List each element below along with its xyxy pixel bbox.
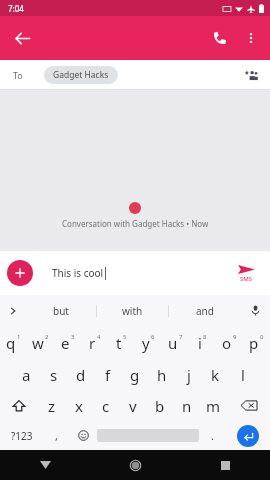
button[interactable]: Expand suggestions — [0, 295, 26, 326]
button[interactable]: Gadget Hacks — [44, 66, 118, 84]
staticText: Gadget Hacks — [53, 69, 109, 81]
button[interactable]: Back — [6, 22, 38, 54]
button[interactable]: e — [54, 326, 81, 359]
staticText: e — [61, 333, 70, 353]
staticText: This is cool — [52, 266, 104, 280]
staticText: ?123 — [11, 429, 33, 443]
button[interactable]: x — [65, 390, 92, 421]
staticText: p — [249, 333, 259, 353]
staticText: To — [13, 69, 23, 81]
staticText: 5 — [123, 333, 127, 341]
button[interactable]: z — [38, 390, 65, 421]
button[interactable]: t — [108, 326, 135, 359]
staticText: 6 — [151, 333, 155, 341]
staticText: with — [122, 304, 143, 318]
button[interactable]: More options — [236, 23, 266, 53]
staticText: n — [182, 396, 192, 416]
staticText: 7 — [179, 333, 183, 341]
staticText: t — [116, 333, 122, 353]
staticText: 2 — [45, 333, 49, 341]
staticText: h — [157, 365, 167, 385]
staticText: but — [53, 304, 69, 318]
staticText: q — [6, 333, 16, 353]
staticText: g — [130, 365, 140, 385]
button[interactable]: Voice input — [240, 295, 270, 326]
button[interactable]: . — [199, 421, 225, 450]
staticText: y — [142, 333, 150, 353]
button[interactable]: l — [229, 359, 256, 390]
staticText: s — [50, 365, 58, 385]
staticText: u — [168, 333, 178, 353]
staticText: v — [129, 396, 137, 416]
staticText: c — [102, 396, 110, 416]
staticText: 7:04 — [8, 3, 24, 14]
button[interactable]: c — [92, 390, 119, 421]
staticText: b — [155, 396, 165, 416]
button[interactable]: k — [202, 359, 229, 390]
staticText: 4 — [97, 333, 101, 341]
button[interactable]: s — [40, 359, 67, 390]
staticText: f — [105, 365, 111, 385]
button[interactable]: o — [216, 326, 243, 359]
button[interactable]: Send SMS — [229, 261, 263, 286]
button[interactable]: i — [189, 326, 216, 359]
staticText: j — [187, 365, 191, 385]
button[interactable]: Shift — [0, 390, 38, 421]
staticText: x — [75, 396, 83, 416]
staticText: i — [198, 333, 202, 353]
staticText: d — [76, 365, 86, 385]
button[interactable]: This is cool — [40, 258, 225, 288]
button[interactable]: b — [146, 390, 173, 421]
staticText: 3 — [71, 333, 75, 341]
staticText: 8 — [203, 333, 207, 341]
staticText: . — [211, 428, 214, 443]
button[interactable]: Back — [0, 450, 90, 480]
button[interactable]: u — [162, 326, 189, 359]
button[interactable]: d — [67, 359, 94, 390]
staticText: 1 — [17, 333, 21, 341]
staticText: m — [206, 396, 221, 416]
button[interactable]: y — [135, 326, 162, 359]
staticText: SMS — [240, 275, 253, 283]
button[interactable]: Call — [204, 22, 236, 54]
staticText: z — [48, 396, 56, 416]
staticText: Conversation with Gadget Hacks • Now — [62, 218, 209, 229]
button[interactable]: with — [97, 295, 168, 326]
button[interactable]: ?123 — [0, 421, 43, 450]
button[interactable]: p — [243, 326, 270, 359]
button[interactable]: m — [200, 390, 227, 421]
button[interactable]: Recent apps — [180, 450, 270, 480]
staticText: k — [211, 365, 220, 385]
staticText: a — [22, 365, 31, 385]
button[interactable]: q — [0, 326, 27, 359]
button[interactable]: w — [27, 326, 54, 359]
button[interactable]: a — [13, 359, 40, 390]
button[interactable]: Backspace — [227, 390, 270, 421]
staticText: 0 — [260, 333, 264, 341]
button[interactable]: Add attachment — [7, 260, 33, 286]
button[interactable]: r — [81, 326, 108, 359]
button[interactable]: Enter — [237, 425, 259, 447]
staticText: , — [55, 428, 58, 443]
staticText: r — [89, 333, 96, 353]
staticText: o — [222, 333, 232, 353]
button[interactable]: j — [175, 359, 202, 390]
button[interactable]: Add people — [238, 62, 264, 88]
button[interactable]: Home — [90, 450, 180, 480]
button[interactable]: Emoji — [69, 421, 97, 450]
button[interactable]: v — [119, 390, 146, 421]
button[interactable]: , — [43, 421, 69, 450]
button[interactable]: but — [26, 295, 96, 326]
button[interactable]: h — [148, 359, 175, 390]
button[interactable]: g — [121, 359, 148, 390]
staticText: and — [196, 304, 214, 318]
staticText: w — [32, 333, 44, 353]
staticText: l — [241, 365, 245, 385]
button[interactable]: f — [94, 359, 121, 390]
button[interactable]: and — [169, 295, 240, 326]
staticText: 9 — [233, 333, 237, 341]
button[interactable]: n — [173, 390, 200, 421]
